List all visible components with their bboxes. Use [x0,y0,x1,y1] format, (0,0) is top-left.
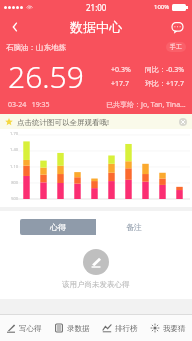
button[interactable]: Close notice [178,117,188,127]
staticText: 1.40 [0,147,18,152]
staticText: +0.3% [111,65,145,75]
staticText: 心得 [50,222,66,232]
staticText: 500 [0,196,18,201]
staticText: 同比：-0.3% [145,65,184,75]
staticText: 03-24 19:35 [8,100,50,110]
button[interactable]: 录数据 [48,315,96,341]
staticText: 该用户尚未发表心得 [62,280,130,289]
staticText: 1.70 [0,131,18,136]
staticText: 1.10 [0,164,18,169]
staticText: 排行榜 [115,324,138,333]
button[interactable]: 我要猜 [144,315,192,341]
staticText: 800 [0,180,18,185]
staticText: 石脑油：山东地炼 [6,43,66,52]
staticText: +17.7 [111,79,145,89]
button[interactable]: 备注 [96,219,172,235]
staticText: 环比：+17.7 [145,79,184,89]
staticText: 数据中心 [70,19,122,35]
staticText: 点击统计图可以全屏观看哦! [17,117,110,127]
staticText: 我要猜 [163,324,186,333]
staticText: 100% [154,3,170,11]
staticText: 录数据 [67,324,90,333]
button[interactable]: Messages [162,14,192,40]
staticText: 写心得 [19,324,42,333]
staticText: 手工 [170,43,182,51]
staticText: 26.59 [8,56,84,97]
button[interactable]: Back [0,14,30,40]
staticText: 21:00 [86,2,107,13]
button[interactable]: Statistics chart [0,129,192,207]
button[interactable]: 写心得 [0,315,48,341]
button[interactable]: 心得 [20,219,96,235]
staticText: 已共享给：Jo, Tan, Tina... [106,100,186,110]
button[interactable]: 排行榜 [96,315,144,341]
staticText: 备注 [126,222,142,232]
button[interactable]: 手工 [170,43,182,51]
